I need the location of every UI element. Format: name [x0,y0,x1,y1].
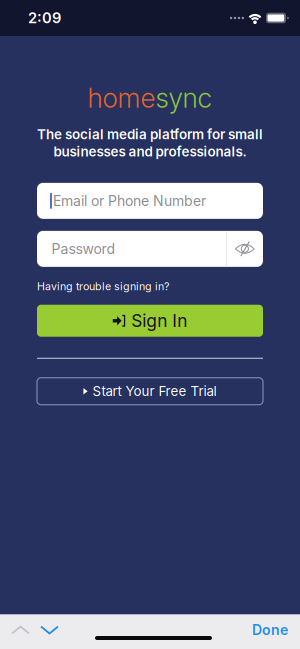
staticText: Done [252,621,288,638]
button[interactable]: Next field [35,615,64,645]
staticText: Password [51,240,115,257]
staticText: home [87,82,155,114]
staticText: Start Your Free Trial [93,383,217,399]
staticText: Email or Phone Number [53,192,206,209]
staticText: businesses and professionals. [53,144,246,160]
button[interactable]: Show password [226,231,263,267]
button[interactable]: Email or Phone Number [37,183,263,219]
staticText: The social media platform for small [37,126,263,143]
staticText: Sign In [131,310,187,331]
button[interactable]: Start Your Free Trial [37,378,263,405]
staticText: 2:09 [28,9,61,27]
staticText: Having trouble signing in? [37,280,169,293]
button[interactable]: Done [240,615,300,645]
button[interactable]: Previous field [6,615,35,645]
button[interactable]: Sign In [37,305,263,337]
staticText: sync [155,82,212,114]
button[interactable]: Having trouble signing in? [37,278,169,295]
button[interactable]: Password [37,231,226,267]
